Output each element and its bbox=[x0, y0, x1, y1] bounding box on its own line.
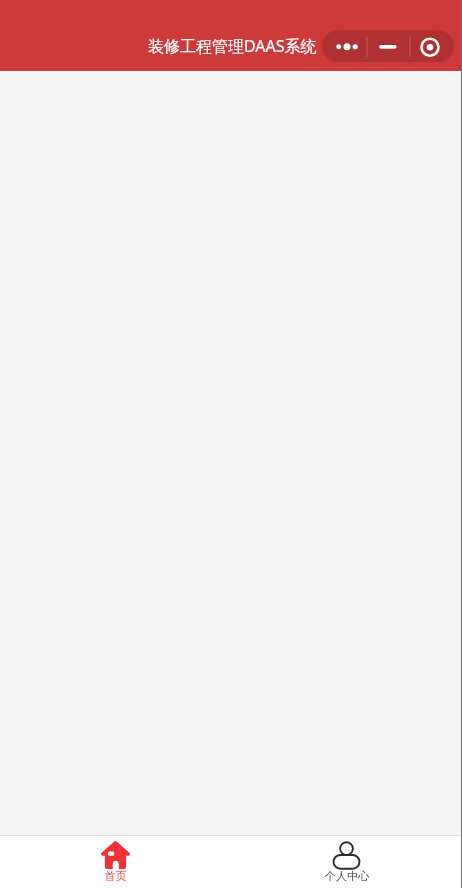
button[interactable]: 首页 bbox=[0, 835, 231, 888]
button[interactable]: Mini program menu bbox=[322, 30, 454, 62]
staticText: 个人中心 bbox=[324, 869, 370, 883]
staticText: 装修工程管理DAAS系统 bbox=[148, 35, 317, 57]
staticText: 首页 bbox=[104, 869, 127, 883]
button[interactable]: 个人中心 bbox=[231, 835, 462, 888]
